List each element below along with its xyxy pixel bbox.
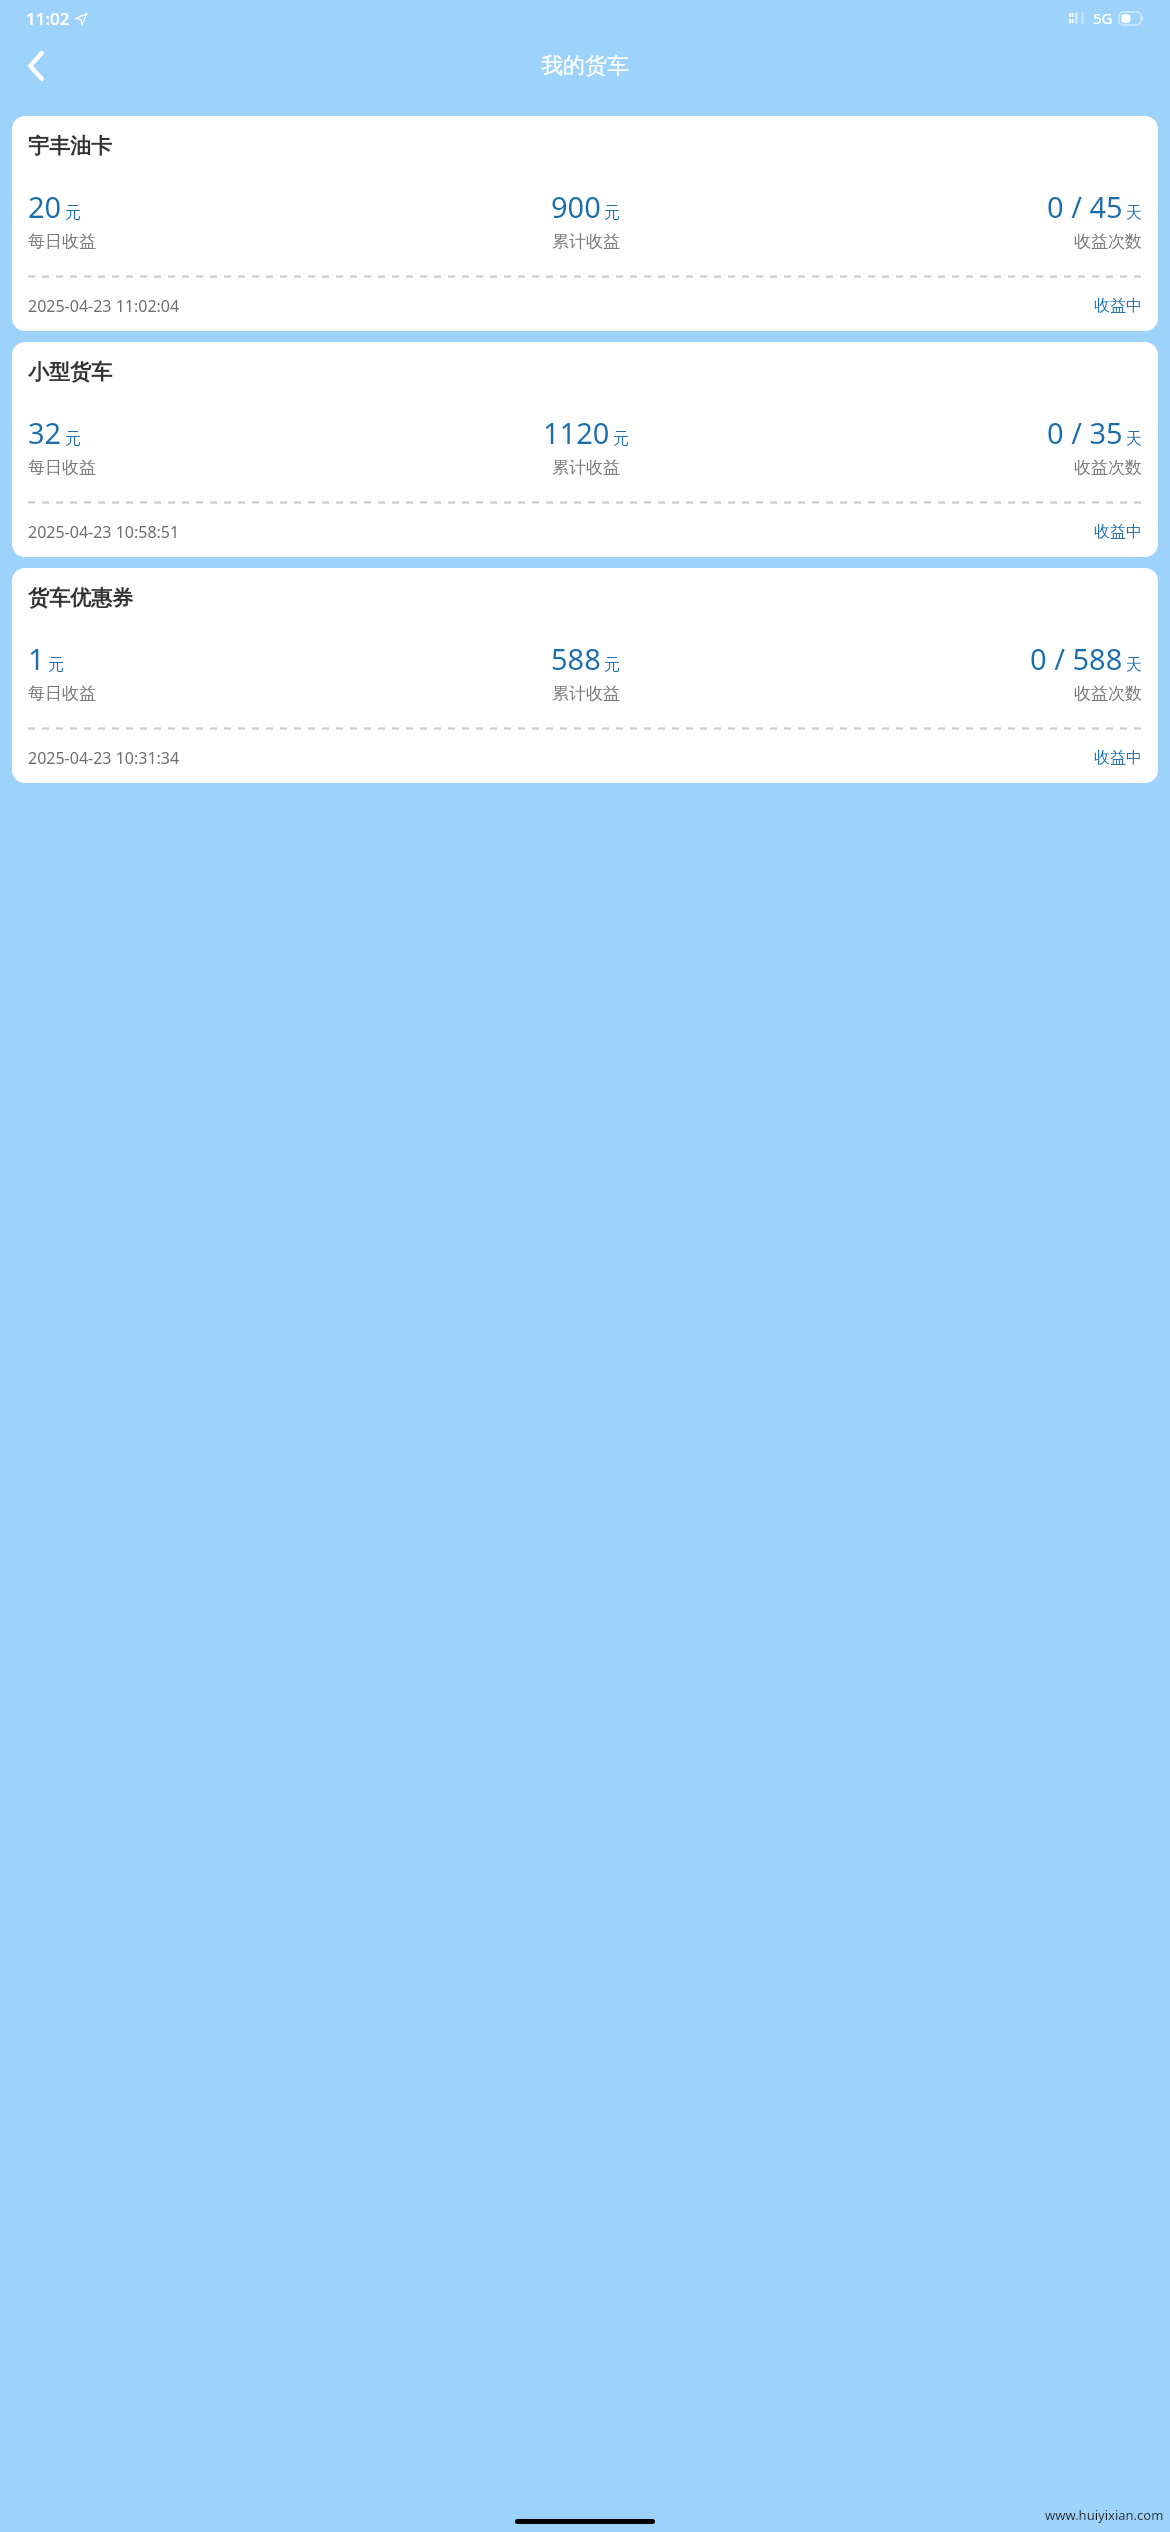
staticText: 天 (1126, 203, 1142, 223)
staticText: 11:02 (26, 7, 70, 30)
staticText: 元 (48, 655, 64, 675)
staticText: 收益次数 (1074, 457, 1142, 478)
staticText: 每日收益 (28, 683, 96, 704)
staticText: 累计收益 (552, 457, 620, 478)
staticText: 每日收益 (28, 457, 96, 478)
button[interactable]: 宇丰油卡 (12, 116, 1158, 331)
staticText: 元 (604, 203, 620, 223)
staticText: 0 / 35 (1047, 413, 1123, 452)
staticText: 天 (1126, 429, 1142, 449)
staticText: 元 (65, 203, 81, 223)
button[interactable]: Back (10, 40, 62, 92)
staticText: 收益次数 (1074, 683, 1142, 704)
staticText: 2025-04-23 10:31:34 (28, 747, 180, 769)
staticText: 2025-04-23 10:58:51 (28, 521, 180, 543)
staticText: 我的货车 (541, 52, 629, 80)
staticText: 元 (613, 429, 629, 449)
staticText: 天 (1126, 655, 1142, 675)
staticText: 元 (65, 429, 81, 449)
staticText: 2025-04-23 11:02:04 (28, 295, 180, 317)
staticText: 收益中 (1094, 748, 1142, 768)
staticText: 累计收益 (552, 683, 620, 704)
staticText: 0 / 588 (1030, 639, 1123, 678)
staticText: 1 (28, 639, 45, 678)
staticText: 900 (551, 187, 601, 226)
staticText: 累计收益 (552, 231, 620, 252)
staticText: www.huiyixian.com (1045, 2506, 1164, 2524)
staticText: 宇丰油卡 (28, 133, 112, 159)
staticText: 20 (28, 187, 62, 226)
staticText: 0 / 45 (1047, 187, 1123, 226)
staticText: 收益中 (1094, 522, 1142, 542)
staticText: 588 (551, 639, 601, 678)
staticText: 每日收益 (28, 231, 96, 252)
staticText: 32 (28, 413, 62, 452)
staticText: 货车优惠券 (28, 585, 133, 611)
staticText: 收益中 (1094, 296, 1142, 316)
staticText: 1120 (543, 413, 610, 452)
button[interactable]: 货车优惠券 (12, 568, 1158, 783)
button[interactable]: 小型货车 (12, 342, 1158, 557)
staticText: 元 (604, 655, 620, 675)
staticText: 5G (1093, 8, 1113, 28)
staticText: 收益次数 (1074, 231, 1142, 252)
staticText: 小型货车 (28, 359, 112, 385)
